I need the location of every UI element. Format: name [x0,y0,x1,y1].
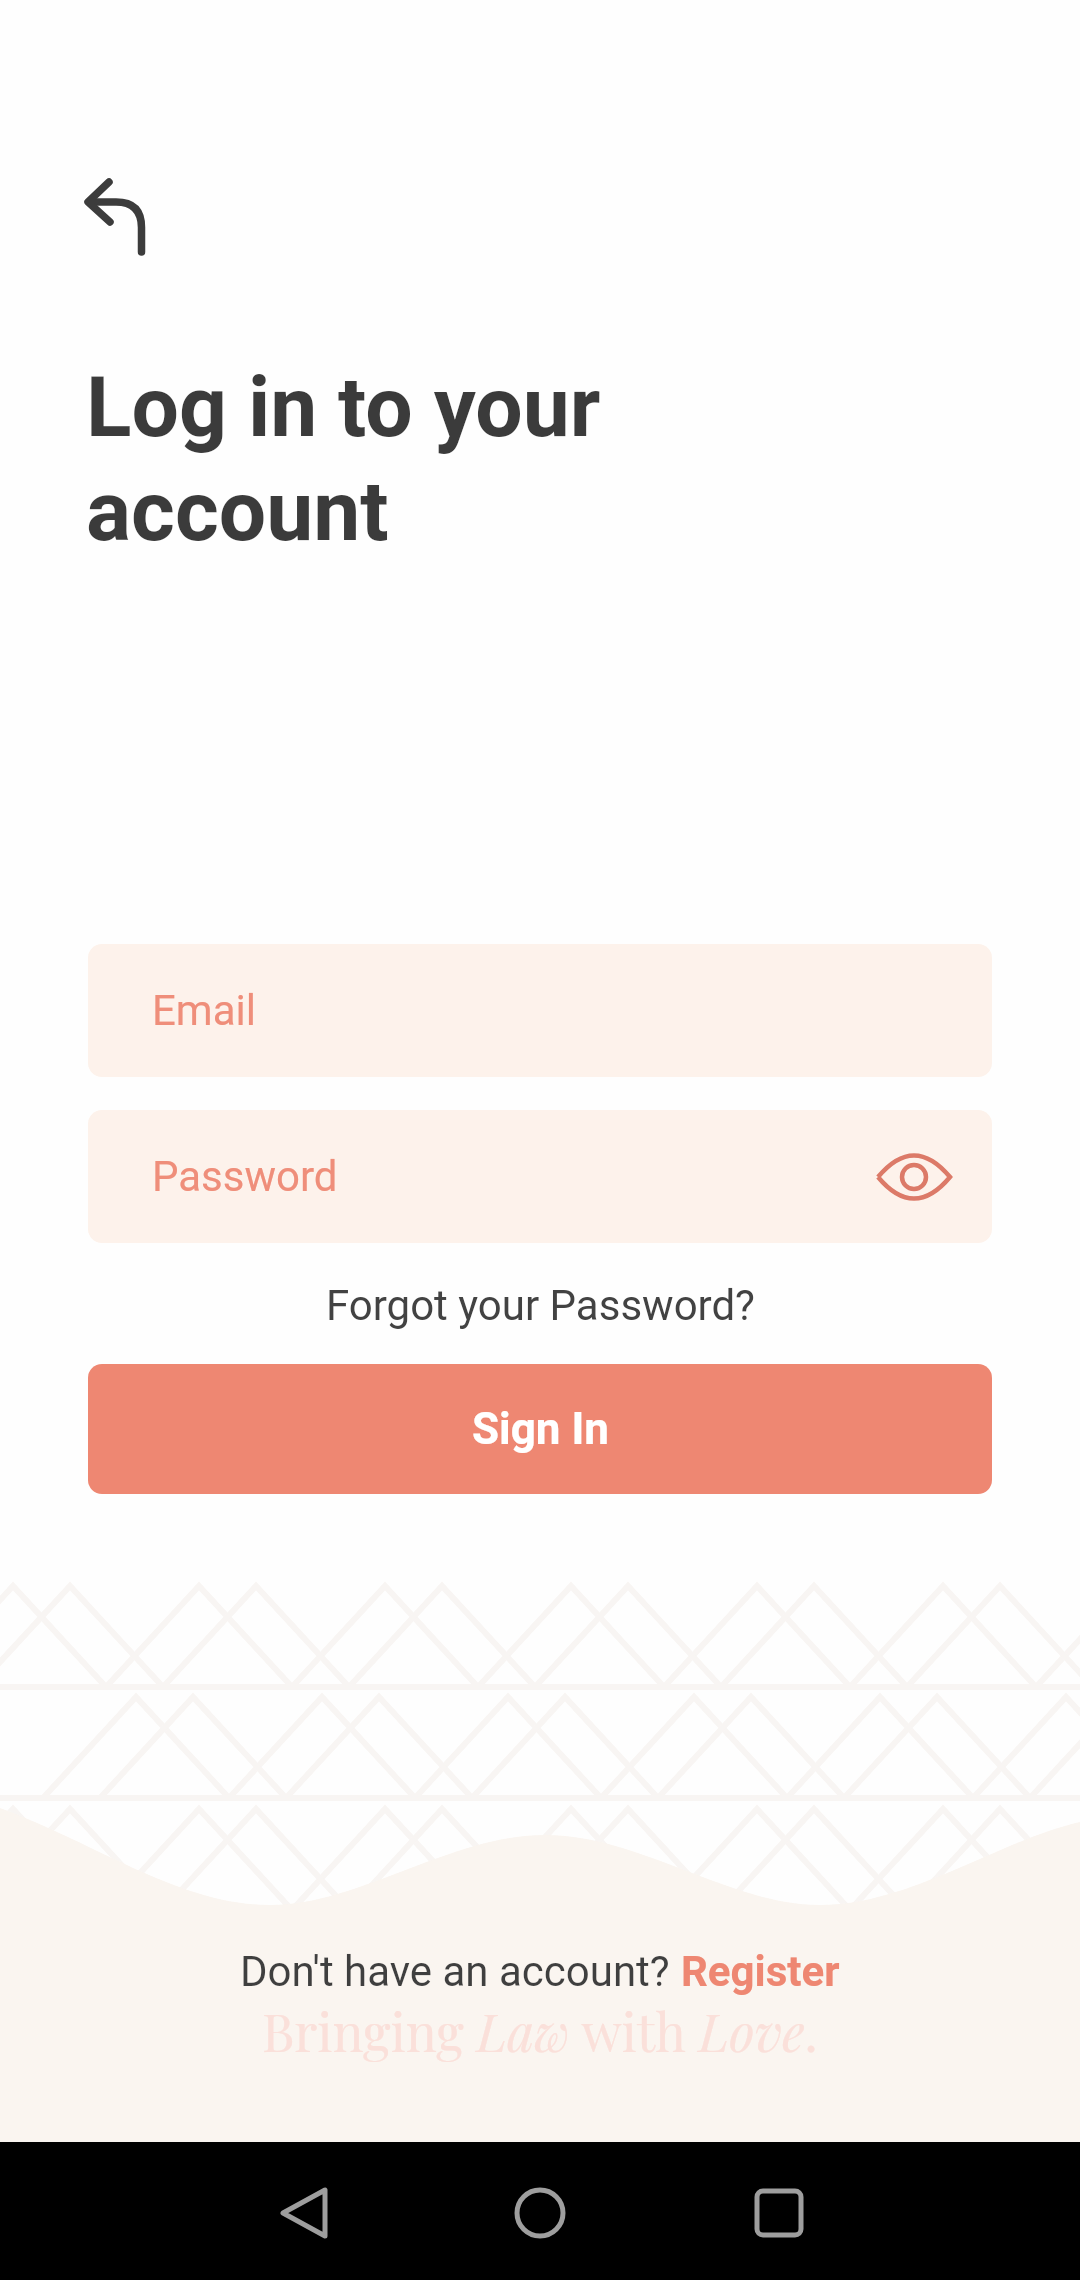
button[interactable] [52,150,164,262]
button[interactable]: Password [88,1110,992,1243]
button[interactable]: Register [681,1947,840,1996]
staticText: Log in to your account [86,358,601,561]
staticText: Bringing Law with Love. [262,1996,818,2065]
button[interactable] [729,2163,829,2263]
staticText: Register [681,1947,840,1996]
button[interactable]: Email [88,944,992,1077]
staticText: Sign In [472,1403,609,1455]
staticText: Password [152,1152,338,1201]
button[interactable] [490,2163,590,2263]
staticText: Don't have an account? [240,1947,681,1996]
button[interactable]: Sign In [88,1364,992,1494]
button[interactable]: Forgot your Password? [0,1281,1080,1330]
button[interactable] [253,2161,353,2261]
staticText: Forgot your Password? [326,1281,755,1330]
staticText: Email [152,986,256,1035]
